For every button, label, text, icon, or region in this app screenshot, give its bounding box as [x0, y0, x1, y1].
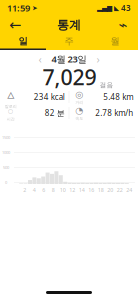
- staticText: 주: [64, 35, 73, 47]
- staticText: 속도: [75, 116, 83, 121]
- staticText: 43: [121, 3, 131, 13]
- staticText: 0: [5, 180, 7, 185]
- staticText: ◎: [75, 89, 83, 100]
- staticText: 일: [18, 35, 27, 47]
- staticText: 1000: [2, 150, 10, 155]
- staticText: 20: [107, 186, 113, 194]
- staticText: 22: [117, 186, 123, 194]
- staticText: 8: [52, 186, 55, 194]
- staticText: 🜂: [7, 85, 15, 104]
- staticText: 1500: [2, 135, 10, 140]
- staticText: ◌: [8, 104, 14, 117]
- staticText: 14: [79, 186, 85, 194]
- staticText: 거리: [75, 100, 83, 105]
- staticText: 시간: [7, 117, 15, 122]
- staticText: ⌁: [118, 17, 127, 33]
- staticText: 7,029: [42, 63, 96, 91]
- button[interactable]: 일: [0, 34, 46, 50]
- staticText: ◔: [75, 105, 83, 116]
- staticText: 4: [33, 186, 36, 194]
- staticText: ◣: [114, 4, 119, 12]
- button[interactable]: Next day: [91, 52, 105, 66]
- staticText: 82 분: [45, 108, 65, 118]
- staticText: 11:59: [7, 2, 30, 14]
- staticText: 12: [69, 186, 75, 194]
- staticText: 걸음: [99, 81, 113, 89]
- staticText: 6: [42, 186, 45, 194]
- button[interactable]: 주: [46, 34, 92, 50]
- button[interactable]: Share: [110, 16, 136, 34]
- button[interactable]: 월: [92, 34, 138, 50]
- button[interactable]: Previous day: [33, 52, 47, 66]
- staticText: 234 kcal: [34, 92, 65, 102]
- staticText: ‹: [38, 52, 41, 66]
- staticText: 5.48 km: [103, 92, 133, 102]
- staticText: ←: [9, 17, 21, 33]
- staticText: 월: [110, 35, 119, 47]
- staticText: 2: [23, 186, 26, 194]
- staticText: 2.78 km/h: [95, 108, 133, 118]
- staticText: ➤: [32, 4, 38, 12]
- staticText: 16: [88, 186, 94, 194]
- staticText: 칼로리: [5, 104, 17, 109]
- staticText: ▂▄▆: [97, 4, 112, 12]
- staticText: 통계: [57, 18, 81, 32]
- staticText: 500: [3, 165, 9, 170]
- staticText: 18: [98, 186, 104, 194]
- staticText: ›: [96, 52, 99, 66]
- staticText: 4월 23일: [51, 53, 86, 65]
- button[interactable]: Back: [2, 16, 28, 34]
- staticText: 24: [126, 186, 132, 194]
- staticText: 10: [60, 186, 66, 194]
